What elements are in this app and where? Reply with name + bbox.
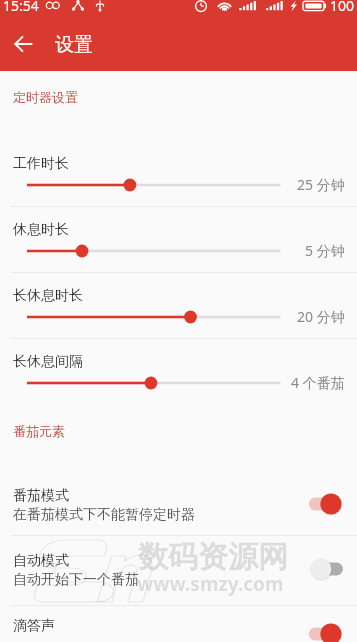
button[interactable]: 工作时长 (0, 144, 357, 210)
staticText: 长休息间隔 (13, 353, 83, 371)
button[interactable]: 番茄模式 (0, 472, 357, 537)
staticText: 番茄模式 (13, 487, 69, 505)
button[interactable]: 长休息时长 (0, 276, 357, 342)
staticText: 设置 (55, 33, 93, 57)
staticText: 25 分钟 (297, 175, 345, 194)
staticText: 15:54 (3, 0, 39, 15)
button[interactable]: 自动模式 (0, 537, 357, 602)
button[interactable]: 长休息间隔 (0, 342, 357, 408)
staticText: 滴答声 (13, 617, 55, 635)
staticText: 定时器设置 (13, 89, 78, 105)
staticText: 20 分钟 (297, 307, 345, 326)
staticText: 5 分钟 (305, 241, 345, 260)
staticText: 番茄元素 (13, 423, 65, 439)
button[interactable]: 滴答声 (0, 602, 357, 642)
button[interactable]: 休息时长 (0, 210, 357, 276)
staticText: 自动开始下一个番茄 (13, 571, 139, 589)
button[interactable]: 滴答声 (307, 616, 345, 642)
button[interactable]: Back (6, 27, 41, 62)
button[interactable]: 番茄模式 (307, 486, 345, 516)
staticText: 休息时长 (13, 221, 69, 239)
staticText: 数码资源网 (138, 538, 288, 576)
staticText: 自动模式 (13, 552, 69, 570)
staticText: 4 个番茄 (291, 373, 345, 392)
button[interactable]: 自动模式 (307, 551, 345, 581)
staticText: 工作时长 (13, 155, 69, 173)
staticText: 100 (330, 0, 355, 15)
staticText: 长休息时长 (13, 287, 83, 305)
staticText: www.smzy.com (137, 571, 284, 597)
staticText: 在番茄模式下不能暂停定时器 (13, 506, 195, 524)
